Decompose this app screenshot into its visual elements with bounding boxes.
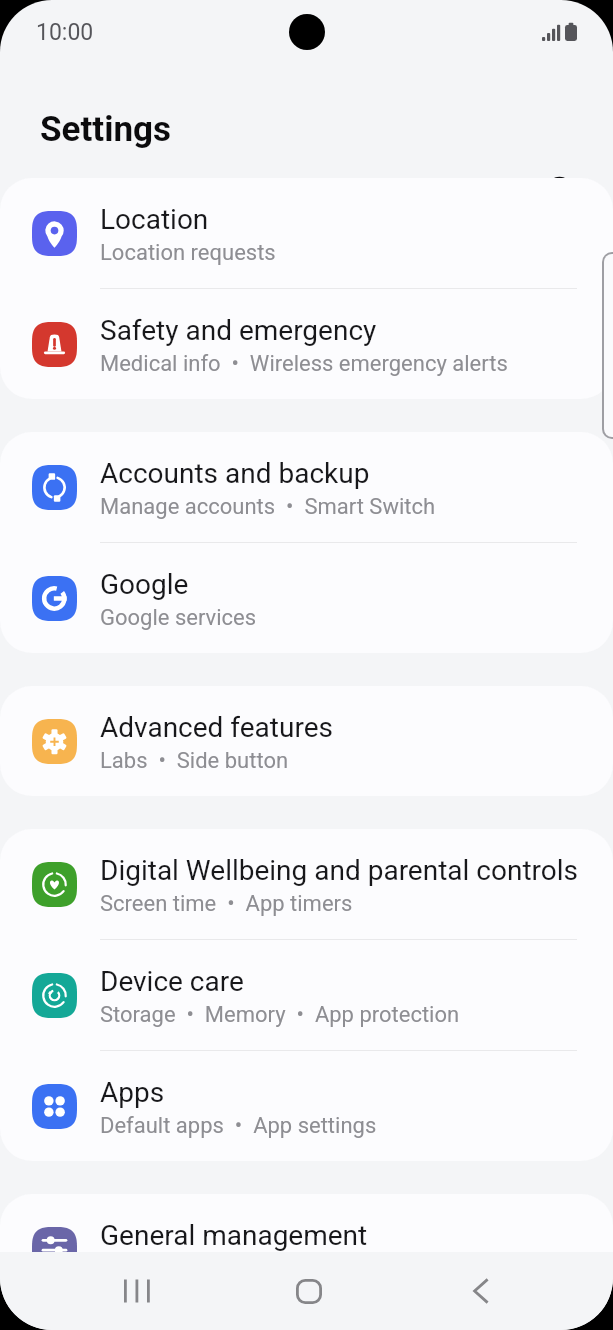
- staticText: Medical info • Wireless emergency alerts: [100, 351, 508, 377]
- staticText: Location: [100, 203, 209, 236]
- staticText: Device care: [100, 965, 244, 998]
- staticText: Location requests: [100, 240, 276, 266]
- staticText: General management: [100, 1219, 368, 1252]
- button[interactable]: Home: [266, 1252, 352, 1330]
- button[interactable]: Device care: [0, 940, 613, 1050]
- button[interactable]: Safety and emergency: [0, 289, 613, 399]
- staticText: Default apps • App settings: [100, 1113, 377, 1139]
- staticText: Apps: [100, 1076, 165, 1109]
- staticText: Language and keyboard: [100, 1256, 334, 1282]
- button[interactable]: Google: [0, 543, 613, 653]
- staticText: Accounts and backup: [100, 457, 370, 490]
- staticText: Digital Wellbeing and parental controls: [100, 854, 579, 887]
- staticText: Screen time • App timers: [100, 891, 353, 917]
- staticText: Google: [100, 568, 189, 601]
- staticText: Safety and emergency: [100, 314, 377, 347]
- button[interactable]: Advanced features: [0, 686, 613, 796]
- button[interactable]: Back: [438, 1252, 524, 1330]
- button[interactable]: Digital Wellbeing and parental controls: [0, 829, 613, 939]
- staticText: Settings: [40, 109, 171, 150]
- button[interactable]: Apps: [0, 1051, 613, 1161]
- button[interactable]: General management: [0, 1194, 613, 1304]
- staticText: Labs • Side button: [100, 748, 289, 774]
- button[interactable]: Accounts and backup: [0, 432, 613, 542]
- staticText: Storage • Memory • App protection: [100, 1002, 460, 1028]
- button[interactable]: Location: [0, 178, 613, 288]
- button[interactable]: Recent apps: [94, 1252, 180, 1330]
- staticText: Manage accounts • Smart Switch: [100, 494, 436, 520]
- staticText: 10:00: [36, 19, 94, 46]
- staticText: Google services: [100, 605, 257, 631]
- staticText: Advanced features: [100, 711, 333, 744]
- button[interactable]: Search: [535, 165, 589, 219]
